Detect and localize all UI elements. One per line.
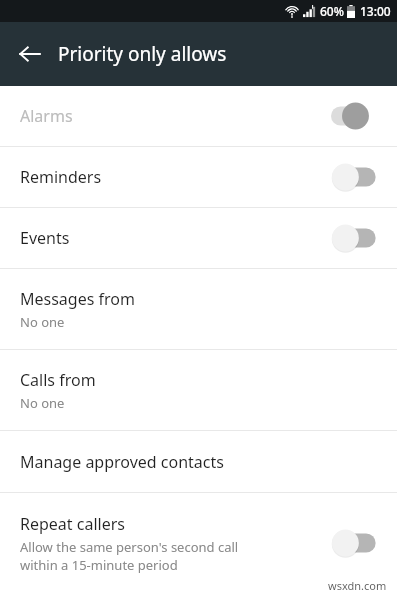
button[interactable]: Manage approved contacts — [0, 431, 397, 492]
button[interactable]: Repeat callers — [0, 493, 397, 593]
staticText: No one — [20, 313, 65, 331]
button[interactable]: Calls from — [0, 350, 397, 430]
staticText: Calls from — [20, 369, 96, 391]
staticText: Events — [20, 227, 331, 249]
staticText: Messages from — [20, 288, 135, 310]
staticText: Priority only allows — [58, 41, 227, 67]
other: Toggle — [331, 102, 379, 130]
staticText: wsxdn.com — [328, 578, 387, 593]
staticText: Allow the same person's second call with… — [20, 538, 239, 574]
button[interactable]: Events — [0, 208, 397, 268]
other: Toggle — [331, 224, 379, 252]
staticText: 13:00 — [360, 3, 391, 19]
button[interactable]: Alarms — [0, 86, 397, 146]
button[interactable]: Reminders — [0, 147, 397, 207]
staticText: Manage approved contacts — [20, 451, 224, 473]
button[interactable]: Messages from — [0, 269, 397, 349]
staticText: Reminders — [20, 166, 331, 188]
staticText: 60% — [320, 3, 344, 19]
staticText: Alarms — [20, 105, 331, 127]
staticText: No one — [20, 394, 65, 412]
staticText: Repeat callers — [20, 513, 125, 535]
button[interactable]: Back — [8, 32, 52, 76]
other: Toggle — [331, 529, 379, 557]
other: Toggle — [331, 163, 379, 191]
